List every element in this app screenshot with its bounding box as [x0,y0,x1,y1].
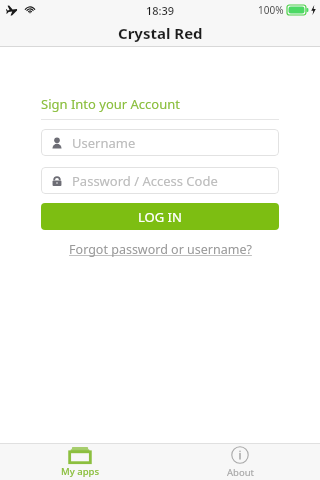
button[interactable]: Username [41,129,279,156]
staticText: Crystal Red [118,23,203,43]
staticText: 100% [258,3,284,17]
button[interactable]: Password / Access Code [41,167,279,194]
button[interactable]: LOG IN [41,203,279,230]
button[interactable]: Forgot password or username? [41,241,279,258]
button[interactable]: About [160,444,320,480]
staticText: LOG IN [138,208,182,226]
staticText: My apps [61,465,100,478]
staticText: Sign Into your Account [41,95,180,113]
staticText: About [227,466,254,479]
button[interactable]: My apps [0,444,160,480]
staticText: Username [72,134,136,152]
staticText: 18:39 [146,3,175,18]
staticText: Forgot password or username? [69,241,252,258]
staticText: Password / Access Code [72,172,218,190]
